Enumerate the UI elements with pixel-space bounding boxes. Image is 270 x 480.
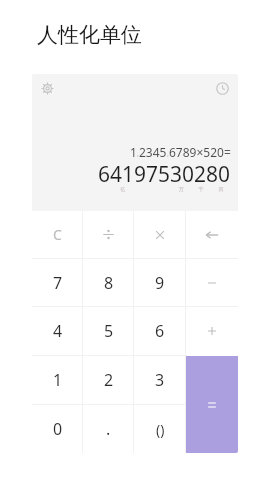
- button[interactable]: 3: [134, 356, 186, 404]
- staticText: 人性化单位: [37, 22, 142, 48]
- staticText: 7: [53, 272, 63, 294]
- staticText: ,: [167, 149, 169, 159]
- staticText: C: [53, 225, 62, 244]
- staticText: 百: [211, 186, 231, 192]
- staticText: 6789×520=: [169, 144, 231, 160]
- staticText: 64197530280: [98, 160, 231, 189]
- button[interactable]: Backspace: [186, 211, 238, 258]
- button[interactable]: 2: [83, 356, 134, 404]
- staticText: 1: [130, 144, 137, 160]
- staticText: 万: [171, 186, 191, 192]
- button[interactable]: 1: [32, 356, 83, 404]
- staticText: 0: [53, 418, 63, 440]
- button[interactable]: Settings: [41, 82, 54, 95]
- staticText: 8: [104, 272, 114, 294]
- staticText: ,: [137, 149, 139, 159]
- button[interactable]: 4: [32, 307, 83, 355]
- button[interactable]: 0: [32, 405, 83, 453]
- button[interactable]: .: [83, 405, 134, 453]
- staticText: 千: [191, 186, 211, 192]
- staticText: .: [106, 418, 111, 440]
- staticText: (): [156, 420, 165, 439]
- staticText: 3: [155, 369, 165, 391]
- staticText: 2345: [139, 144, 167, 160]
- button[interactable]: Divide: [83, 211, 134, 258]
- staticText: 2: [104, 369, 114, 391]
- button[interactable]: History: [216, 82, 229, 95]
- button[interactable]: 5: [83, 307, 134, 355]
- button[interactable]: 9: [134, 259, 186, 306]
- staticText: 4: [53, 320, 63, 342]
- button[interactable]: C: [32, 211, 83, 258]
- button[interactable]: 7: [32, 259, 83, 306]
- staticText: 5: [104, 320, 114, 342]
- staticText: 亿: [113, 186, 132, 192]
- button[interactable]: Plus: [186, 307, 238, 355]
- button[interactable]: Equals: [186, 356, 238, 453]
- staticText: 9: [155, 272, 165, 294]
- button[interactable]: (): [134, 405, 186, 453]
- staticText: 6: [155, 320, 165, 342]
- button[interactable]: Multiply: [134, 211, 186, 258]
- button[interactable]: 6: [134, 307, 186, 355]
- staticText: 1: [53, 369, 63, 391]
- button[interactable]: 8: [83, 259, 134, 306]
